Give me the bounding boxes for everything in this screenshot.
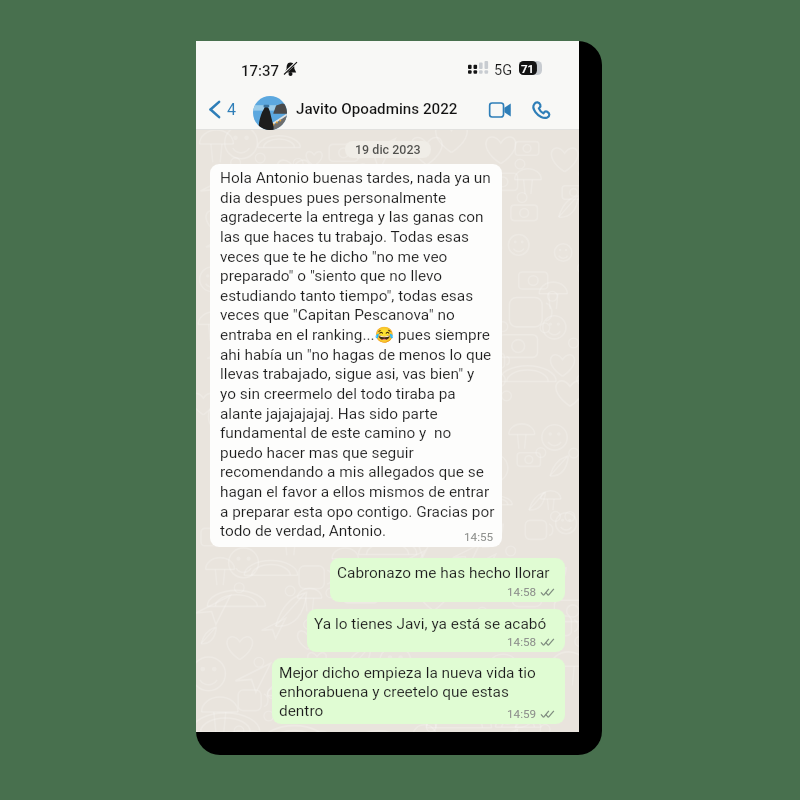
staticText: 14:58 [507, 585, 537, 599]
staticText: llevas trabajado, sigue asi, vas bien" y [220, 365, 475, 383]
staticText: veces que "Capitan Pescanova" no [220, 306, 455, 324]
staticText: ahi había un "no hagas de menos lo que [220, 346, 492, 364]
staticText: 14:58 [507, 635, 537, 649]
staticText: 4 [227, 100, 236, 119]
button[interactable]: Cabronazo me has hecho llorar [330, 558, 565, 602]
button[interactable]: Ya lo tienes Javi, ya está se acabó [307, 609, 565, 652]
staticText: recomendando a mis allegados que se [220, 463, 484, 481]
staticText: yo sin creermelo del todo tiraba pa [220, 385, 456, 403]
staticText: 5G [494, 62, 513, 79]
staticText: Ya lo tienes Javi, ya está se acabó [314, 615, 547, 633]
staticText: entraba en el ranking...😂 pues siempre [220, 326, 490, 344]
staticText: hagan el favor a ellos mismos de entrar [220, 483, 490, 501]
staticText: a preparar esta opo contigo. Gracias por [220, 503, 495, 521]
button[interactable]: Mejor dicho empieza la nueva vida tio [272, 658, 565, 724]
staticText: 17:37 [241, 62, 280, 80]
button[interactable]: Voice call [525, 93, 557, 125]
staticText: preparado" o "siento que no llevo [220, 267, 443, 285]
staticText: Hola Antonio buenas tardes, nada ya un [220, 169, 491, 187]
button[interactable]: Video call [484, 94, 516, 126]
staticText: dia despues pues personalmente [220, 189, 447, 207]
staticText: todo de verdad, Antonio. [220, 522, 387, 540]
staticText: alante jajajajajaj. Has sido parte [220, 405, 438, 423]
staticText: agradecerte la entrega y las ganas con [220, 208, 484, 226]
staticText: 14:55 [464, 530, 494, 544]
staticText: puedo hacer mas que seguir [220, 444, 414, 462]
button[interactable]: 19 dic 2023 [345, 141, 431, 158]
staticText: fundamental de este camino y no [220, 424, 452, 442]
staticText: las que haces tu trabajo. Todas esas [220, 228, 470, 246]
staticText: veces que te he dicho "no me veo [220, 248, 448, 266]
staticText: Mejor dicho empieza la nueva vida tio [279, 664, 536, 682]
staticText: 19 dic 2023 [355, 142, 421, 157]
button[interactable]: Profile photo [253, 96, 287, 130]
staticText: 14:59 [507, 707, 537, 721]
staticText: 71 [521, 62, 535, 75]
button[interactable]: Hola Antonio buenas tardes, nada ya un [210, 164, 502, 547]
button[interactable]: Back, 4 chats [205, 96, 240, 123]
staticText: Cabronazo me has hecho llorar [337, 564, 550, 582]
staticText: estudiando tanto tiempo", todas esas [220, 287, 474, 305]
staticText: Javito Opoadmins 2022 [296, 100, 458, 118]
staticText: dentro [279, 702, 324, 720]
staticText: enhorabuena y creetelo que estas [279, 683, 509, 701]
